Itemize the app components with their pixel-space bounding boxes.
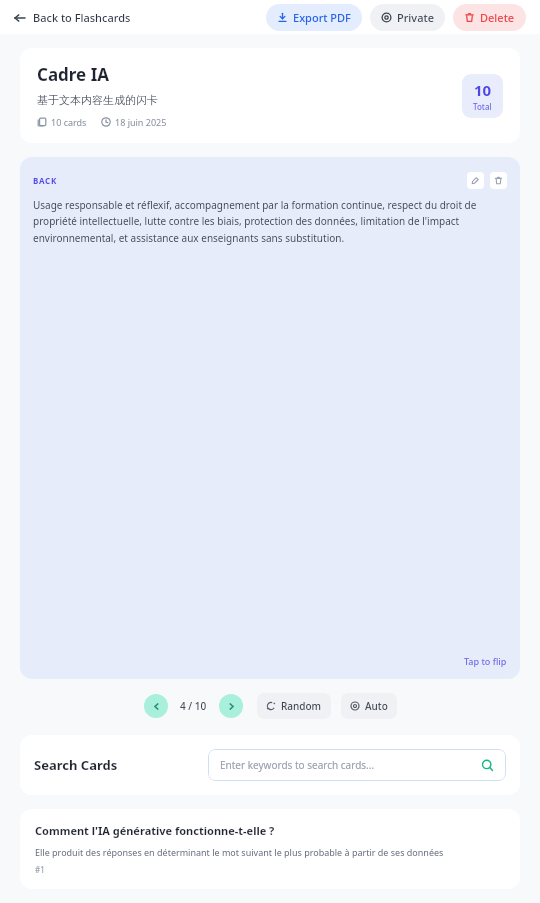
- staticText: Usage responsable et réflexif, accompagn…: [33, 198, 483, 245]
- button[interactable]: Back to Flashcards: [14, 6, 131, 29]
- button[interactable]: Comment l'IA générative fonctionne-t-ell…: [20, 809, 520, 889]
- staticText: Random: [281, 699, 322, 713]
- button[interactable]: Private: [370, 4, 445, 31]
- button[interactable]: Delete card: [490, 172, 507, 189]
- staticText: 10: [474, 80, 492, 100]
- staticText: Cadre IA: [37, 63, 110, 86]
- button[interactable]: Edit card: [467, 172, 484, 189]
- staticText: 10 cards: [51, 116, 87, 128]
- staticText: Back to Flashcards: [33, 10, 131, 25]
- button[interactable]: Next card: [219, 694, 243, 718]
- staticText: Elle produit des réponses en déterminant…: [35, 846, 505, 858]
- button[interactable]: Delete: [453, 4, 526, 31]
- staticText: Enter keywords to search cards...: [220, 758, 375, 772]
- staticText: 18 juin 2025: [115, 116, 167, 128]
- staticText: 基于文本内容生成的闪卡: [37, 93, 158, 107]
- button[interactable]: Export PDF: [266, 4, 362, 31]
- staticText: Export PDF: [293, 10, 351, 25]
- button[interactable]: Enter keywords to search cards...: [208, 749, 506, 781]
- staticText: Tap to flip: [464, 655, 507, 667]
- staticText: Auto: [365, 699, 388, 713]
- button[interactable]: Random: [257, 693, 331, 719]
- button[interactable]: BACK: [20, 157, 520, 679]
- staticText: Delete: [480, 10, 515, 25]
- staticText: BACK: [33, 175, 57, 186]
- staticText: Private: [397, 10, 434, 25]
- staticText: Comment l'IA générative fonctionne-t-ell…: [35, 823, 275, 838]
- staticText: Total: [473, 101, 492, 112]
- button[interactable]: Previous card: [144, 694, 168, 718]
- button[interactable]: Auto: [341, 693, 397, 719]
- staticText: #1: [35, 864, 45, 875]
- staticText: 4 / 10: [180, 699, 207, 713]
- staticText: Search Cards: [34, 756, 118, 774]
